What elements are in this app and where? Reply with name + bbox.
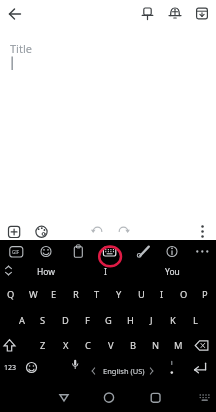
button[interactable]: G	[97, 308, 119, 333]
button[interactable]: T	[86, 282, 108, 307]
button[interactable]: C	[77, 333, 99, 358]
button[interactable]: O	[173, 282, 195, 307]
staticText: D	[62, 314, 69, 327]
button[interactable]	[190, 388, 216, 410]
button[interactable]	[6, 242, 27, 262]
button[interactable]	[88, 222, 107, 241]
button[interactable]	[163, 358, 181, 384]
button[interactable]	[162, 242, 182, 262]
button[interactable]	[48, 388, 80, 410]
button[interactable]	[114, 222, 133, 241]
staticText: A	[19, 314, 25, 327]
staticText: G	[105, 314, 112, 327]
button[interactable]	[99, 242, 121, 262]
button[interactable]: P	[194, 282, 216, 307]
button[interactable]: J	[140, 308, 162, 333]
staticText: Title	[10, 41, 32, 56]
staticText: I	[160, 288, 164, 301]
staticText: C	[85, 339, 91, 352]
button[interactable]: S	[32, 308, 54, 333]
staticText: English (US)	[103, 366, 145, 376]
staticText: L	[193, 314, 198, 327]
staticText: Z	[40, 339, 46, 352]
button[interactable]	[166, 4, 184, 23]
staticText: H	[127, 314, 134, 327]
button[interactable]: W	[22, 282, 44, 307]
button[interactable]	[64, 358, 86, 384]
button[interactable]	[188, 358, 214, 384]
staticText: How	[37, 266, 55, 278]
staticText: U	[138, 288, 145, 301]
button[interactable]: You	[146, 262, 198, 281]
button[interactable]: H	[119, 308, 141, 333]
button[interactable]: Z	[32, 333, 54, 358]
button[interactable]: X	[55, 333, 77, 358]
button[interactable]: N	[145, 333, 167, 358]
button[interactable]	[194, 222, 211, 241]
button[interactable]	[93, 388, 125, 410]
staticText: N	[152, 339, 160, 352]
button[interactable]: L	[184, 308, 206, 333]
staticText: B	[130, 339, 137, 352]
staticText: GIF	[12, 249, 20, 255]
staticText: 123	[4, 363, 17, 373]
button[interactable]	[139, 388, 171, 410]
button[interactable]: Q	[0, 282, 22, 307]
button[interactable]: How	[20, 262, 72, 281]
staticText: K	[170, 314, 176, 327]
button[interactable]: I	[151, 282, 173, 307]
button[interactable]	[22, 358, 41, 384]
button[interactable]	[132, 242, 152, 262]
button[interactable]: 123	[0, 356, 20, 380]
staticText: O	[180, 288, 188, 301]
button[interactable]: B	[122, 333, 144, 358]
staticText: J	[150, 314, 153, 327]
button[interactable]: English (US)	[89, 359, 159, 383]
button[interactable]	[0, 262, 17, 280]
button[interactable]	[0, 358, 20, 384]
button[interactable]	[4, 222, 24, 241]
staticText: You	[165, 266, 180, 278]
button[interactable]	[0, 333, 28, 358]
button[interactable]: Y	[108, 282, 130, 307]
staticText: V	[108, 339, 114, 352]
button[interactable]: R	[65, 282, 87, 307]
button[interactable]	[190, 333, 216, 358]
staticText: W	[29, 288, 38, 301]
button[interactable]: GIF	[9, 246, 23, 257]
button[interactable]	[32, 222, 51, 241]
button[interactable]	[139, 4, 156, 23]
button[interactable]: K	[162, 308, 184, 333]
staticText: F	[85, 314, 90, 327]
staticText: Q	[7, 288, 15, 301]
staticText: R	[73, 288, 79, 301]
button[interactable]: D	[54, 308, 76, 333]
button[interactable]	[192, 242, 214, 262]
button[interactable]	[68, 242, 88, 262]
button[interactable]: V	[100, 333, 122, 358]
button[interactable]: A	[11, 308, 33, 333]
staticText: M	[174, 339, 183, 352]
staticText: Y	[116, 288, 122, 301]
button[interactable]: I	[86, 262, 124, 281]
staticText: I	[104, 266, 107, 278]
staticText: E	[51, 288, 57, 301]
staticText: T	[94, 288, 100, 301]
staticText: P	[202, 288, 208, 301]
button[interactable]: F	[76, 308, 98, 333]
button[interactable]: U	[130, 282, 152, 307]
button[interactable]	[86, 358, 161, 384]
button[interactable]	[36, 242, 56, 262]
button[interactable]: E	[43, 282, 65, 307]
button[interactable]	[4, 4, 24, 24]
staticText: S	[40, 314, 46, 327]
button[interactable]	[193, 4, 211, 23]
button[interactable]: M	[167, 333, 189, 358]
staticText: X	[63, 339, 69, 352]
